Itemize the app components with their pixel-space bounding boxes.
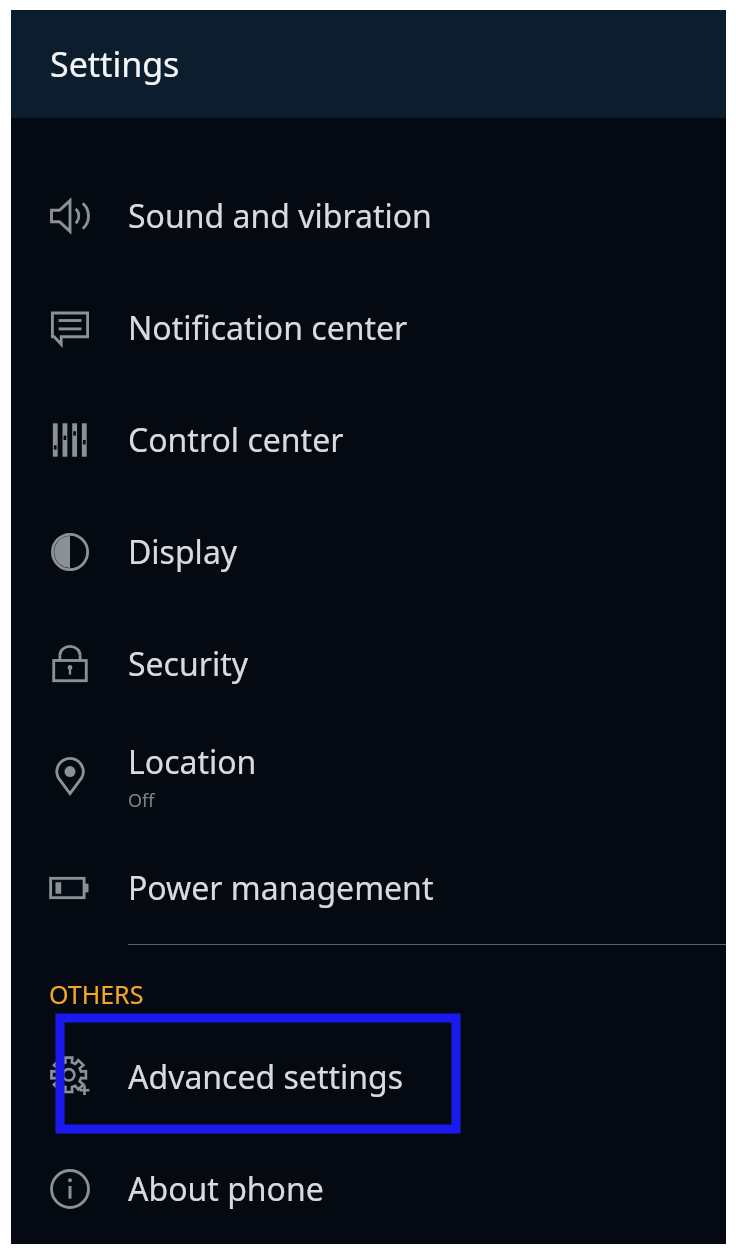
button[interactable]: Display xyxy=(11,496,726,608)
staticText: Sound and vibration xyxy=(128,194,432,238)
staticText: Advanced settings xyxy=(128,1055,404,1099)
staticText: Off xyxy=(128,788,155,813)
staticText: OTHERS xyxy=(49,977,144,1011)
button[interactable]: Control center xyxy=(11,384,726,496)
staticText: Notification center xyxy=(128,306,408,350)
button[interactable]: About phone xyxy=(11,1133,726,1244)
button[interactable]: Notification center xyxy=(11,272,726,384)
staticText: Security xyxy=(128,642,249,686)
staticText: About phone xyxy=(128,1167,324,1211)
button[interactable]: Security xyxy=(11,608,726,720)
staticText: Settings xyxy=(50,41,180,87)
staticText: Control center xyxy=(128,418,344,462)
button[interactable]: Power management xyxy=(11,832,726,944)
staticText: Power management xyxy=(128,866,434,910)
staticText: Display xyxy=(128,530,238,574)
button[interactable]: Advanced settings xyxy=(11,1021,726,1133)
button[interactable]: Sound and vibration xyxy=(11,160,726,272)
staticText: Location xyxy=(128,740,257,784)
button[interactable]: Location xyxy=(11,720,726,832)
